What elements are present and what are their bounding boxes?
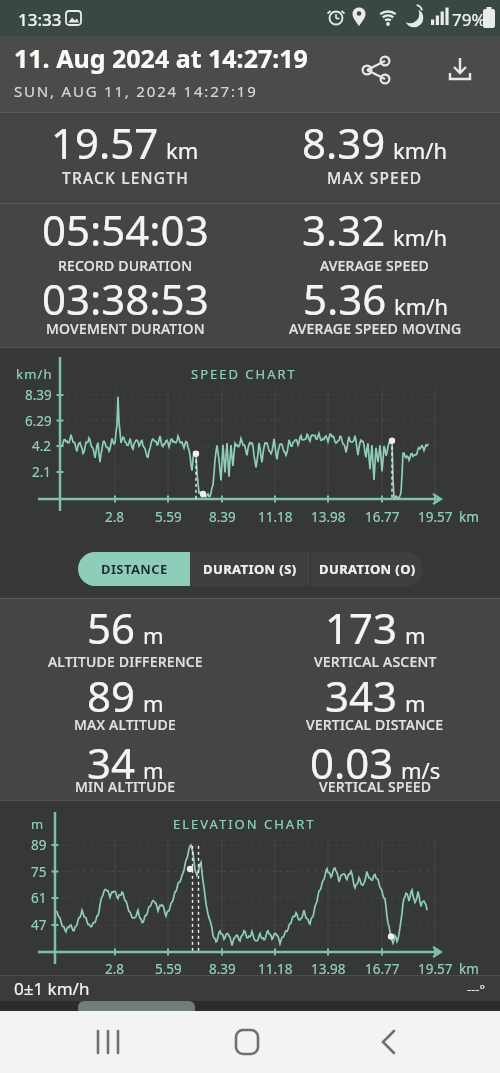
staticText: DURATION (O) bbox=[319, 560, 416, 578]
staticText: VERTICAL ASCENT bbox=[314, 652, 437, 662]
staticText: km/h bbox=[393, 135, 448, 165]
staticText: 11. Aug 2024 at 14:27:19 bbox=[14, 41, 308, 75]
staticText: 56 bbox=[87, 599, 136, 656]
staticText: km/h bbox=[393, 222, 448, 252]
staticText: 05:54:03 bbox=[42, 201, 209, 258]
staticText: AVERAGE SPEED bbox=[320, 256, 430, 268]
staticText: VERTICAL DISTANCE bbox=[306, 715, 444, 725]
staticText: 0±1 km/h bbox=[14, 977, 90, 1000]
staticText: 5.59 bbox=[155, 508, 182, 526]
staticText: 343 bbox=[325, 667, 398, 724]
staticText: 13.98 bbox=[311, 508, 346, 526]
staticText: 79% bbox=[452, 8, 486, 31]
staticText: 89 bbox=[31, 836, 47, 854]
staticText: 11.18 bbox=[258, 508, 293, 526]
staticText: m bbox=[143, 620, 164, 650]
staticText: 16.77 bbox=[365, 508, 400, 526]
staticText: km/h bbox=[394, 291, 449, 321]
staticText: 4.2 bbox=[32, 437, 52, 455]
staticText: km/h bbox=[16, 365, 53, 383]
staticText: 13.98 bbox=[311, 960, 346, 978]
staticText: RECORD DURATION bbox=[58, 256, 193, 268]
staticText: 8.39 bbox=[25, 386, 52, 404]
staticText: m bbox=[31, 815, 45, 833]
staticText: DISTANCE bbox=[101, 560, 168, 578]
staticText: MAX ALTITUDE bbox=[74, 715, 177, 725]
staticText: 75 bbox=[31, 863, 47, 881]
staticText: 8.39 bbox=[209, 508, 236, 526]
staticText: 19.57 bbox=[418, 508, 453, 526]
staticText: SUN, AUG 11, 2024 14:27:19 bbox=[14, 81, 258, 101]
staticText: km bbox=[459, 508, 479, 526]
staticText: 19.57 bbox=[418, 960, 453, 978]
staticText: km bbox=[166, 135, 199, 165]
staticText: 8.39 bbox=[209, 960, 236, 978]
staticText: VERTICAL SPEED bbox=[319, 777, 432, 787]
staticText: 5.36 bbox=[303, 270, 387, 327]
staticText: 13:33 bbox=[18, 8, 62, 31]
staticText: 3.32 bbox=[302, 201, 386, 258]
staticText: km bbox=[459, 960, 479, 978]
staticText: 2.1 bbox=[32, 463, 52, 481]
staticText: 11.18 bbox=[258, 960, 293, 978]
staticText: ELEVATION CHART bbox=[173, 815, 316, 833]
staticText: 19.57 bbox=[51, 114, 159, 171]
staticText: 2.8 bbox=[105, 960, 125, 978]
staticText: ALTITUDE DIFFERENCE bbox=[48, 652, 203, 662]
staticText: SPEED CHART bbox=[191, 365, 297, 383]
staticText: 34 bbox=[87, 734, 136, 791]
staticText: MAX SPEED bbox=[327, 167, 423, 188]
staticText: 2.8 bbox=[105, 508, 125, 526]
staticText: m bbox=[405, 620, 426, 650]
staticText: 61 bbox=[31, 889, 47, 907]
staticText: 47 bbox=[31, 916, 47, 934]
staticText: 173 bbox=[325, 599, 398, 656]
staticText: m/s bbox=[401, 755, 441, 785]
staticText: m bbox=[143, 688, 164, 718]
staticText: 16.77 bbox=[365, 960, 400, 978]
staticText: MOVEMENT DURATION bbox=[46, 319, 205, 332]
staticText: 03:38:53 bbox=[42, 270, 209, 327]
staticText: 89 bbox=[87, 667, 136, 724]
staticText: 6.29 bbox=[25, 412, 52, 430]
staticText: 0.03 bbox=[310, 734, 394, 791]
staticText: ---° bbox=[467, 980, 486, 998]
staticText: 8.39 bbox=[302, 114, 386, 171]
staticText: AVERAGE SPEED MOVING bbox=[289, 319, 462, 332]
staticText: 5.59 bbox=[155, 960, 182, 978]
staticText: m bbox=[143, 755, 164, 785]
staticText: m bbox=[405, 688, 426, 718]
staticText: DURATION (S) bbox=[203, 560, 297, 578]
staticText: MIN ALTITUDE bbox=[75, 777, 176, 787]
staticText: TRACK LENGTH bbox=[62, 167, 189, 188]
